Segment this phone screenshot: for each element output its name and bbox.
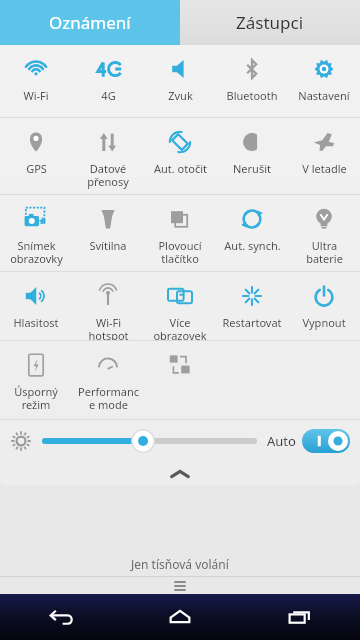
button[interactable]: Ultra baterie [288, 195, 360, 271]
button[interactable]: Snímek obrazovky [0, 195, 72, 271]
staticText: Zástupci [236, 11, 304, 34]
button[interactable]: Více obrazovek [144, 272, 216, 340]
button[interactable]: Aut. otočit [144, 118, 216, 194]
staticText: Zvuk [168, 88, 193, 103]
button[interactable]: V letadle [288, 118, 360, 194]
staticText: Wi-Fi hotspot [88, 315, 129, 340]
staticText: Performanc e mode [78, 384, 139, 412]
button[interactable]: GPS [0, 118, 72, 194]
button[interactable]: Datové přenosy [72, 118, 144, 194]
button[interactable]: Performanc e mode [72, 341, 144, 419]
button[interactable]: Recents [240, 594, 360, 640]
staticText: Svítilna [89, 238, 127, 253]
button[interactable]: Aut. synch. [216, 195, 288, 271]
button[interactable]: Úsporný režim [0, 341, 72, 419]
button[interactable]: Vypnout [288, 272, 360, 340]
staticText: 4G [101, 88, 116, 103]
staticText: Aut. otočit [154, 161, 207, 176]
staticText: Restartovat [222, 315, 282, 330]
button[interactable]: Plovoucí tlačítko [144, 195, 216, 271]
button[interactable]: Home [120, 594, 240, 640]
staticText: Oznámení [49, 11, 131, 34]
staticText: Hlasitost [13, 315, 59, 330]
button[interactable]: Nerušit [216, 118, 288, 194]
button[interactable]: Zástupci [180, 0, 360, 45]
staticText: Wi-Fi [23, 88, 49, 103]
button[interactable]: Toggle [144, 341, 216, 419]
staticText: V letadle [302, 161, 347, 176]
staticText: GPS [26, 161, 47, 176]
button[interactable]: Svítilna [72, 195, 144, 271]
button[interactable]: Bluetooth [216, 45, 288, 117]
staticText: Snímek obrazovky [10, 238, 63, 266]
staticText: Vypnout [302, 315, 346, 330]
staticText: Plovoucí tlačítko [158, 238, 202, 266]
button[interactable]: Auto brightness [302, 429, 350, 453]
button[interactable]: Hlasitost [0, 272, 72, 340]
button[interactable]: Wi-Fi [0, 45, 72, 117]
staticText: Nerušit [233, 161, 271, 176]
button[interactable]: Oznámení [0, 0, 180, 45]
button[interactable]: 4G [72, 45, 144, 117]
staticText: Datové přenosy [87, 161, 129, 189]
staticText: Aut. synch. [224, 238, 281, 253]
staticText: Úsporný režim [14, 384, 58, 412]
button[interactable]: Wi-Fi hotspot [72, 272, 144, 340]
button[interactable]: Zvuk [144, 45, 216, 117]
staticText: Ultra baterie [306, 238, 343, 266]
button[interactable]: Back [0, 594, 120, 640]
button[interactable]: Collapse [0, 462, 360, 485]
button[interactable]: Nastavení [288, 45, 360, 117]
staticText: Více obrazovek [153, 315, 207, 340]
button[interactable]: Brightness [42, 428, 257, 454]
staticText: Auto [267, 432, 296, 450]
staticText: Jen tísňová volání [131, 556, 229, 572]
staticText: Bluetooth [226, 88, 278, 103]
button[interactable]: Restartovat [216, 272, 288, 340]
staticText: Nastavení [298, 88, 350, 103]
